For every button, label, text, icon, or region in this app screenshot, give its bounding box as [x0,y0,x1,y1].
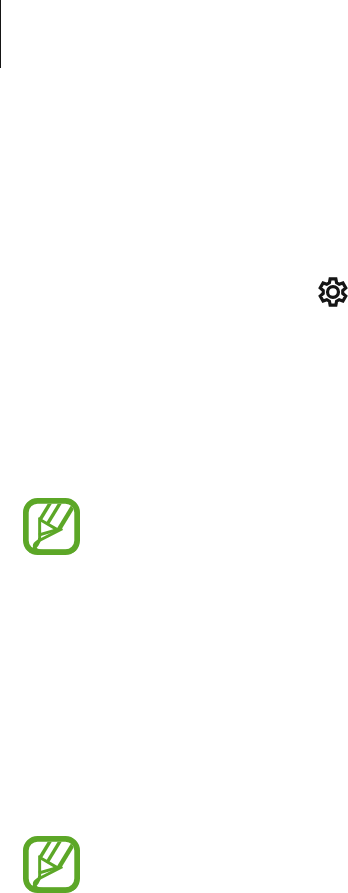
button[interactable]: Settings [312,271,348,313]
button[interactable] [0,498,348,836]
button[interactable] [0,836,348,893]
